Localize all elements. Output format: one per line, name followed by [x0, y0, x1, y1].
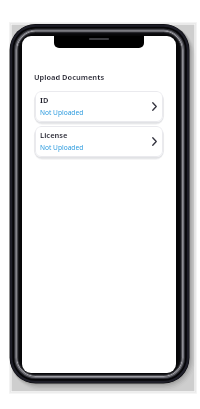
other: Open License [152, 137, 157, 146]
staticText: Upload Documents [34, 72, 105, 82]
other: Open ID [152, 102, 157, 111]
button[interactable]: ID [35, 91, 163, 122]
button[interactable]: License [35, 126, 163, 157]
staticText: Not Uploaded [40, 143, 84, 152]
staticText: License [40, 130, 68, 140]
staticText: ID [40, 95, 49, 105]
staticText: Not Uploaded [40, 108, 84, 117]
